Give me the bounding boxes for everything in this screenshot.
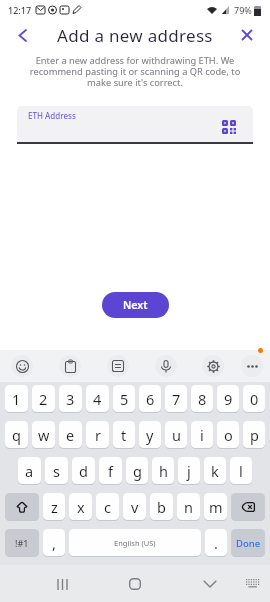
button[interactable]: q [5,421,28,449]
button[interactable] [123,572,147,596]
staticText: x [77,497,85,517]
staticText: l [239,461,243,481]
staticText: i [200,425,204,445]
staticText: c [104,497,111,517]
button[interactable]: o [217,421,239,449]
staticText: 4 [93,389,102,409]
button[interactable] [58,354,82,378]
staticText: e [66,425,75,445]
staticText: n [184,497,193,517]
staticText: 5 [120,389,129,409]
staticText: v [131,497,139,517]
button[interactable]: ETH Address [17,106,253,144]
staticText: a [25,461,34,481]
button[interactable]: z [43,493,65,521]
staticText: d [79,461,88,481]
button[interactable]: 4 [86,385,109,413]
button[interactable]: s [45,457,68,485]
staticText: k [211,461,219,481]
staticText: s [53,461,60,481]
button[interactable]: 6 [139,385,161,413]
button[interactable] [50,572,74,596]
button[interactable]: g [126,457,148,485]
button[interactable]: x [69,493,92,521]
button[interactable]: e [59,421,82,449]
button[interactable]: j [178,457,200,485]
staticText: b [157,497,166,517]
staticText: . [214,533,218,553]
staticText: !#1 [15,537,29,549]
button[interactable]: a [18,457,41,485]
button[interactable]: Done [231,529,265,557]
staticText: 2 [39,389,48,409]
staticText: o [224,425,233,445]
button[interactable]: 0 [243,385,265,413]
staticText: 7 [172,389,181,409]
button[interactable]: 8 [191,385,213,413]
button[interactable]: . [205,529,227,557]
staticText: q [12,425,21,445]
button[interactable] [10,354,34,378]
staticText: h [159,461,168,481]
staticText: Done [236,537,261,550]
button[interactable] [231,493,265,521]
staticText: Add a new address [57,24,213,47]
button[interactable] [154,354,178,378]
button[interactable]: 9 [217,385,239,413]
button[interactable]: 2 [32,385,55,413]
button[interactable]: i [191,421,213,449]
staticText: 9 [224,389,233,409]
button[interactable]: h [152,457,174,485]
button[interactable]: , [43,529,65,557]
button[interactable]: w [32,421,55,449]
button[interactable]: n [177,493,200,521]
staticText: f [108,461,113,481]
staticText: r [95,425,101,445]
staticText: 12:17 [8,4,32,16]
button[interactable]: u [165,421,187,449]
staticText: ETH Address [28,110,76,121]
button[interactable] [242,573,264,595]
staticText: English (US) [114,538,156,548]
button[interactable] [106,354,130,378]
button[interactable]: v [123,493,146,521]
button[interactable] [5,493,39,521]
staticText: y [146,425,154,445]
button[interactable] [198,572,222,596]
button[interactable]: d [72,457,95,485]
staticText: 1 [12,389,21,409]
staticText: 8 [198,389,207,409]
button[interactable]: !#1 [5,529,39,557]
staticText: , [52,533,56,553]
button[interactable] [201,354,225,378]
staticText: p [250,425,259,445]
button[interactable]: English (US) [69,529,201,557]
staticText: 3 [66,389,75,409]
staticText: 6 [146,389,155,409]
button[interactable]: 3 [59,385,82,413]
button[interactable]: t [113,421,135,449]
button[interactable]: 5 [113,385,135,413]
staticText: z [51,497,58,517]
button[interactable]: Next [102,292,169,318]
button[interactable]: f [99,457,122,485]
button[interactable] [10,23,34,47]
button[interactable]: r [86,421,109,449]
button[interactable]: k [204,457,226,485]
button[interactable] [240,354,264,378]
button[interactable]: 7 [165,385,187,413]
staticText: t [121,425,127,445]
button[interactable]: m [204,493,227,521]
staticText: Next [123,298,148,312]
button[interactable]: p [243,421,265,449]
staticText: m [209,497,223,517]
button[interactable]: 1 [5,385,28,413]
button[interactable] [236,24,258,46]
staticText: g [133,461,142,481]
staticText: w [38,425,50,445]
button[interactable]: y [139,421,161,449]
button[interactable]: b [150,493,173,521]
staticText: u [172,425,181,445]
button[interactable]: l [230,457,252,485]
button[interactable]: c [96,493,119,521]
